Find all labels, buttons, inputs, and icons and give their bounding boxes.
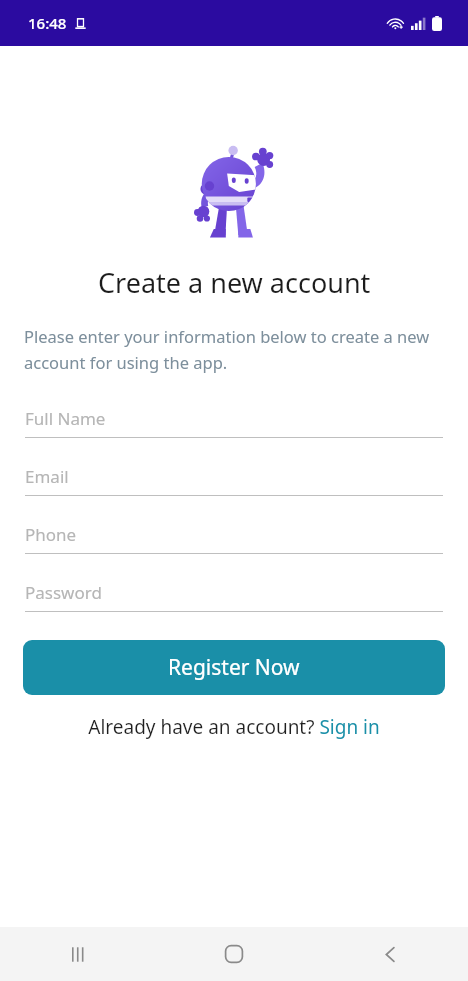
staticText: Full Name bbox=[25, 407, 106, 430]
button[interactable]: Password bbox=[25, 581, 443, 612]
staticText: Already have an account? Sign in bbox=[88, 714, 380, 740]
button[interactable]: Already have an account? Sign in bbox=[0, 714, 468, 740]
staticText: Create a new account bbox=[98, 264, 371, 301]
button[interactable]: Recent apps bbox=[0, 927, 156, 981]
staticText: 16:48 bbox=[28, 13, 67, 33]
staticText: Email bbox=[25, 465, 69, 488]
button[interactable]: Email bbox=[25, 465, 443, 496]
button[interactable]: Home bbox=[156, 927, 312, 981]
button[interactable]: Full Name bbox=[25, 407, 443, 438]
staticText: Phone bbox=[25, 523, 77, 546]
staticText: Password bbox=[25, 581, 102, 604]
button[interactable]: Phone bbox=[25, 523, 443, 554]
button[interactable]: Back bbox=[312, 927, 468, 981]
staticText: Please enter your information below to c… bbox=[24, 325, 444, 374]
button[interactable]: Register Now bbox=[23, 640, 445, 695]
staticText: Register Now bbox=[168, 653, 300, 682]
